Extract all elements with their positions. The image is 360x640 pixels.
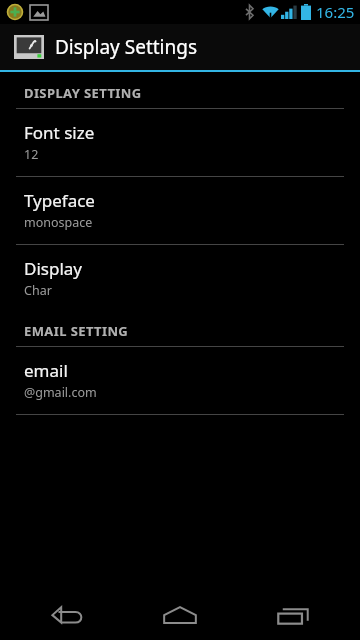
button[interactable]: Typeface bbox=[0, 177, 360, 244]
staticText: Display bbox=[24, 257, 82, 280]
button[interactable]: Home bbox=[135, 592, 225, 640]
staticText: monospace bbox=[24, 214, 93, 231]
button[interactable]: Display bbox=[0, 245, 360, 312]
staticText: 12 bbox=[24, 146, 39, 163]
button[interactable]: email bbox=[0, 347, 360, 414]
button[interactable]: Recent apps bbox=[248, 592, 338, 640]
staticText: Font size bbox=[24, 121, 95, 144]
staticText: EMAIL SETTING bbox=[24, 322, 129, 340]
staticText: @gmail.com bbox=[24, 384, 97, 401]
staticText: Typeface bbox=[24, 189, 95, 212]
staticText: 16:25 bbox=[316, 2, 355, 22]
button[interactable]: Display Settings bbox=[0, 24, 360, 70]
staticText: DISPLAY SETTING bbox=[24, 84, 142, 102]
button[interactable]: Font size bbox=[0, 109, 360, 176]
button[interactable]: Back bbox=[23, 592, 113, 640]
staticText: Char bbox=[24, 282, 52, 299]
staticText: email bbox=[24, 359, 68, 382]
staticText: Display Settings bbox=[55, 34, 198, 60]
